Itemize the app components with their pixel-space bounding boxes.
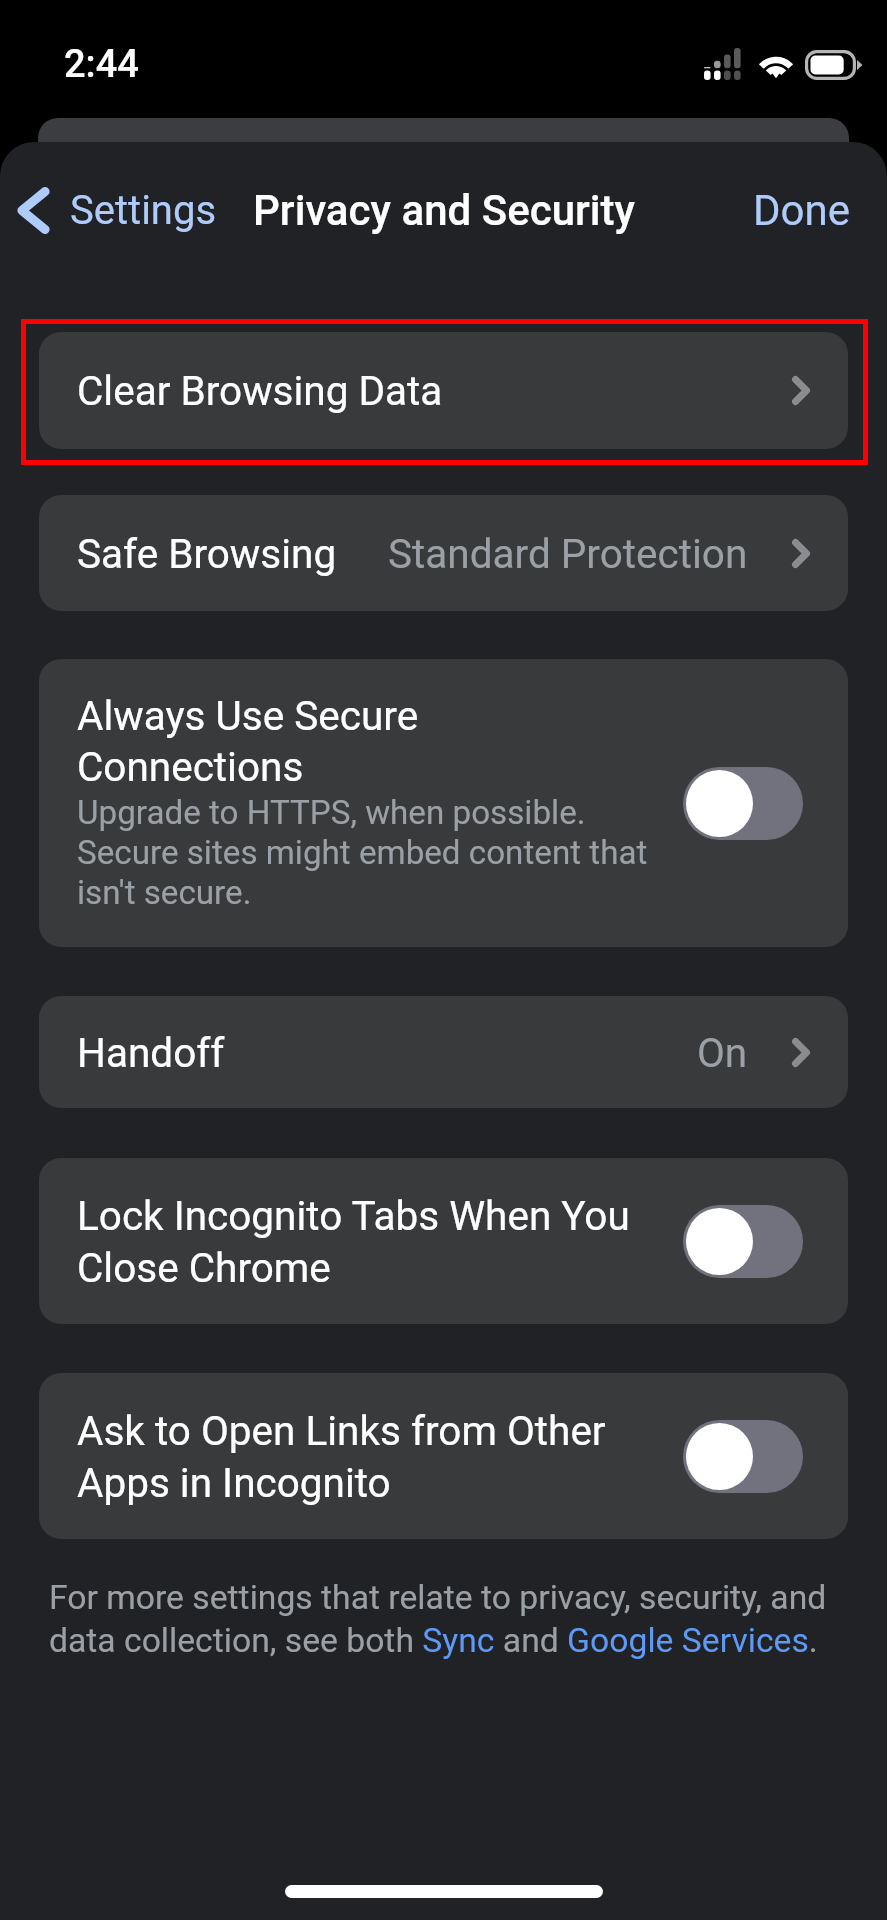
button[interactable]: Lock Incognito Tabs When You Close Chrom… (39, 1158, 848, 1324)
button[interactable]: Lock Incognito Tabs When You Close Chrom… (683, 1205, 803, 1278)
button[interactable]: Always Use Secure Connections (39, 659, 848, 947)
button[interactable]: Ask to Open Links from Other Apps in Inc… (39, 1373, 848, 1539)
button[interactable]: Back to Settings (0, 179, 229, 242)
button[interactable]: Always Use Secure Connections (683, 767, 803, 840)
other: Battery (805, 50, 863, 80)
staticText: For more settings that relate to privacy… (49, 1575, 827, 1661)
staticText: Done (753, 186, 850, 235)
other: Wi-Fi (757, 49, 795, 78)
button[interactable]: Google Services (567, 1646, 815, 1684)
staticText: Clear Browsing Data (77, 367, 443, 414)
staticText: On (697, 1029, 748, 1076)
staticText: Always Use Secure Connections (77, 690, 419, 792)
staticText: Lock Incognito Tabs When You Close Chrom… (77, 1189, 630, 1293)
staticText: Standard Protection (388, 530, 748, 577)
staticText: Upgrade to HTTPS, when possible. Secure … (77, 792, 648, 912)
button[interactable]: Ask to Open Links from Other Apps in Inc… (683, 1420, 803, 1493)
button[interactable]: Safe Browsing (39, 495, 848, 611)
staticText: Ask to Open Links from Other Apps in Inc… (77, 1404, 606, 1508)
button[interactable]: Done (725, 174, 887, 247)
staticText: Safe Browsing (77, 530, 337, 577)
staticText: Privacy and Security (253, 186, 635, 235)
staticText: Handoff (77, 1029, 225, 1076)
button[interactable]: Clear Browsing Data (39, 332, 848, 449)
button[interactable]: Handoff (39, 996, 848, 1108)
other: Cellular signal (704, 48, 744, 80)
button[interactable]: Sync (422, 1646, 498, 1684)
staticText: Settings (70, 187, 217, 234)
staticText: 2:44 (64, 42, 139, 87)
